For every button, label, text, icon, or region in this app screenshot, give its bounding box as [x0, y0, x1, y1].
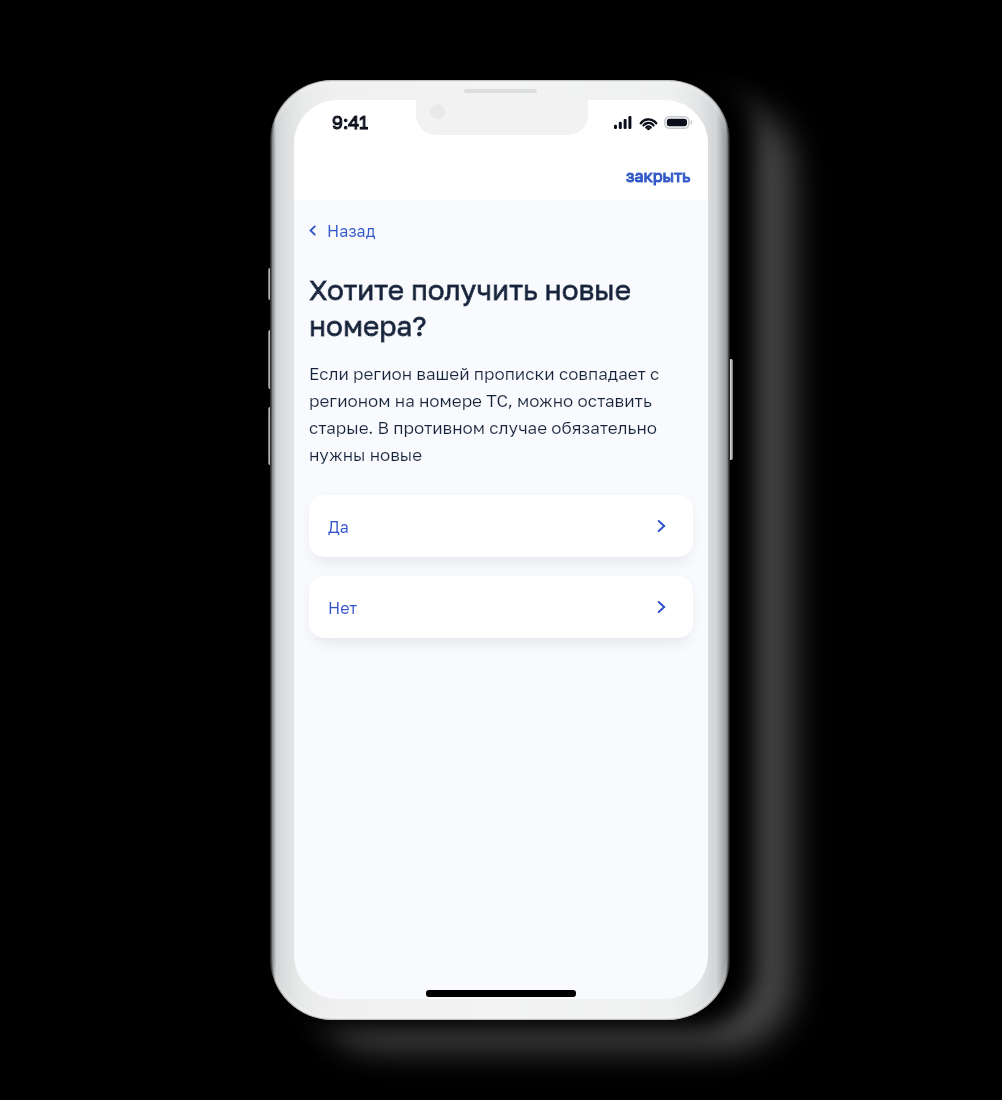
staticText: 9:41	[332, 111, 368, 133]
staticText: закрыть	[626, 166, 691, 185]
button[interactable]: закрыть	[608, 156, 707, 197]
staticText: Нет	[328, 598, 358, 617]
staticText: Да	[328, 517, 349, 536]
staticText: Назад	[327, 221, 376, 240]
button[interactable]: Назад	[306, 215, 379, 246]
staticText: Хотите получить новые номера?	[309, 273, 639, 342]
button[interactable]: Нет	[309, 576, 693, 638]
staticText: 9:41	[332, 111, 368, 133]
staticText: Если регион вашей прописки совпадает с р…	[309, 363, 664, 465]
staticText: Хотите получить новые номера?	[309, 273, 639, 342]
staticText: закрыть	[626, 166, 691, 185]
button[interactable]: Да	[309, 495, 693, 557]
